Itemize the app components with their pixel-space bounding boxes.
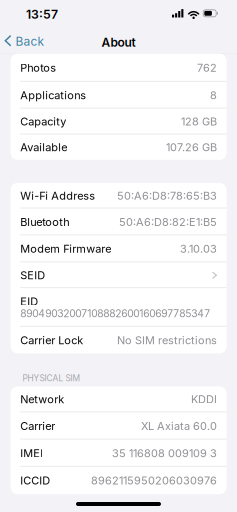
staticText: 128 GB	[181, 115, 217, 128]
button[interactable]: Photos	[11, 54, 227, 82]
staticText: No SIM restrictions	[117, 333, 217, 347]
staticText: 8	[210, 89, 217, 102]
staticText: Network	[20, 393, 64, 406]
staticText: 50:A6:D8:78:65:B3	[117, 189, 217, 202]
button[interactable]: Bluetooth	[11, 208, 227, 235]
staticText: Modem Firmware	[20, 242, 111, 255]
staticText: 8962115950206030976	[91, 474, 217, 487]
button[interactable]: IMEI	[11, 440, 227, 467]
staticText: IMEI	[20, 447, 43, 460]
staticText: 107.26 GB	[166, 141, 217, 154]
staticText: 3.10.03	[180, 242, 217, 255]
button[interactable]: Carrier	[11, 412, 227, 440]
staticText: Applications	[20, 89, 86, 102]
staticText: Carrier Lock	[20, 333, 83, 347]
staticText: Wi-Fi Address	[20, 189, 95, 202]
staticText: 13:57	[26, 7, 58, 22]
staticText: XL Axiata 60.0	[141, 419, 217, 432]
staticText: EID	[20, 295, 38, 308]
staticText: Carrier	[20, 419, 55, 432]
button[interactable]: Network	[11, 386, 227, 412]
staticText: 762	[197, 61, 217, 74]
button[interactable]: ICCID	[11, 467, 227, 494]
button[interactable]: SEID	[11, 262, 227, 288]
button[interactable]: Capacity	[11, 109, 227, 134]
staticText: Back	[16, 34, 45, 49]
button[interactable]: Wi-Fi Address	[11, 183, 227, 208]
staticText: 50:A6:D8:82:E1:B5	[119, 215, 217, 228]
staticText: SEID	[20, 269, 45, 282]
staticText: Capacity	[20, 115, 66, 128]
button[interactable]: Modem Firmware	[11, 235, 227, 262]
button[interactable]: Available	[11, 134, 227, 160]
staticText: ICCID	[20, 474, 50, 487]
staticText: About	[101, 35, 135, 49]
button[interactable]: EID	[11, 288, 227, 327]
staticText: 35 116808 009109 3	[112, 447, 217, 460]
staticText: Bluetooth	[20, 215, 69, 228]
button[interactable]: Back	[0, 28, 45, 53]
staticText: KDDI	[191, 393, 217, 406]
button[interactable]: Carrier Lock	[11, 327, 227, 353]
button[interactable]: Applications	[11, 82, 227, 109]
staticText: 89049032007108882600160697785347	[20, 307, 210, 320]
staticText: Available	[20, 141, 67, 154]
staticText: PHYSICAL SIM	[23, 373, 81, 383]
staticText: Photos	[20, 61, 56, 74]
